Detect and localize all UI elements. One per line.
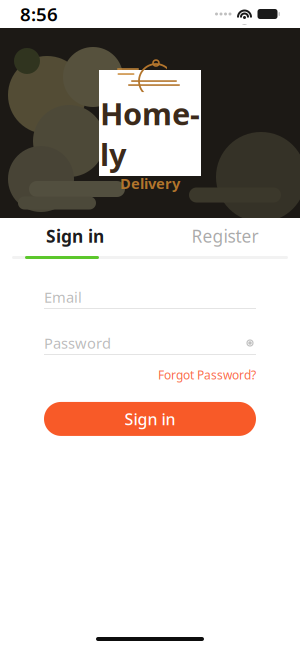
staticText: Sign in — [124, 408, 175, 429]
button[interactable]: Sign in — [44, 402, 256, 436]
staticText: Delivery — [120, 173, 180, 193]
staticText: Forgot Password? — [158, 367, 256, 383]
staticText: Password — [44, 333, 111, 353]
button[interactable]: Forgot Password? — [158, 367, 256, 383]
button[interactable]: Register — [150, 218, 300, 254]
staticText: Homely — [100, 93, 200, 174]
button[interactable]: Email — [44, 286, 256, 309]
staticText: Sign in — [46, 224, 104, 247]
button[interactable]: Sign in — [0, 218, 150, 254]
button[interactable]: Password — [44, 332, 256, 355]
staticText: Register — [191, 224, 258, 247]
staticText: 8:56 — [20, 2, 58, 26]
staticText: Email — [44, 287, 82, 307]
